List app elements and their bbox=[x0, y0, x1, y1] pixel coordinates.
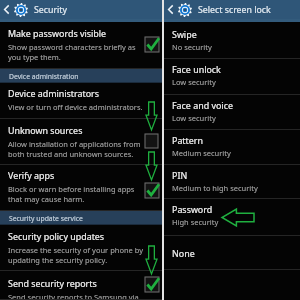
staticText: Medium to high security bbox=[172, 183, 258, 193]
button[interactable]: Security policy updates bbox=[0, 225, 162, 271]
staticText: Select screen lock bbox=[198, 4, 271, 16]
staticText: Security update service bbox=[9, 214, 83, 223]
staticText: Unknown sources bbox=[8, 124, 83, 136]
button[interactable]: Send security reports bbox=[0, 271, 162, 300]
button[interactable]: Settings bbox=[178, 3, 192, 17]
staticText: PIN bbox=[172, 169, 188, 181]
button[interactable]: Settings bbox=[14, 3, 28, 17]
staticText: that may cause harm. bbox=[8, 194, 85, 204]
staticText: View or turn off device administrators. bbox=[8, 102, 143, 112]
staticText: both trusted and unknown sources. bbox=[8, 149, 134, 159]
button[interactable]: Make passwords visible bbox=[0, 22, 162, 69]
staticText: Device administrators bbox=[8, 87, 100, 99]
staticText: Low security bbox=[172, 77, 216, 87]
staticText: Swipe bbox=[172, 28, 197, 40]
button[interactable]: None bbox=[164, 236, 300, 270]
staticText: None bbox=[172, 247, 195, 259]
staticText: Face and voice bbox=[172, 99, 233, 111]
button[interactable]: Unknown sources bbox=[0, 119, 162, 165]
staticText: Verify apps bbox=[8, 169, 55, 181]
staticText: Face unlock bbox=[172, 63, 221, 75]
staticText: Send security reports bbox=[8, 277, 97, 289]
button[interactable]: Face and voice bbox=[164, 95, 300, 130]
staticText: Block or warn before installing apps bbox=[8, 184, 135, 194]
button[interactable]: Face unlock bbox=[164, 59, 300, 95]
button[interactable]: Password bbox=[164, 199, 300, 236]
button[interactable]: Swipe bbox=[164, 24, 300, 59]
staticText: you type them. bbox=[8, 52, 61, 62]
staticText: Password bbox=[172, 203, 213, 215]
staticText: Show password characters briefly as bbox=[8, 42, 136, 52]
button[interactable]: Verify apps bbox=[0, 165, 162, 211]
staticText: Device administration bbox=[9, 72, 79, 81]
staticText: Pattern bbox=[172, 134, 203, 146]
staticText: Security bbox=[34, 4, 68, 16]
staticText: High security bbox=[172, 217, 219, 227]
staticText: updating the security policy. bbox=[8, 255, 108, 265]
button[interactable]: Pattern bbox=[164, 130, 300, 165]
button[interactable]: Back bbox=[4, 5, 9, 14]
staticText: Low security bbox=[172, 113, 216, 123]
staticText: Increase the security of your phone by bbox=[8, 245, 144, 255]
button[interactable]: Back bbox=[168, 5, 173, 14]
staticText: No security bbox=[172, 42, 212, 52]
staticText: Medium security bbox=[172, 148, 231, 158]
staticText: Make passwords visible bbox=[8, 27, 107, 39]
staticText: Send security reports to Samsung via bbox=[8, 292, 139, 300]
button[interactable]: PIN bbox=[164, 165, 300, 199]
staticText: Allow installation of applications from bbox=[8, 139, 141, 149]
staticText: Security policy updates bbox=[8, 230, 105, 242]
button[interactable]: Device administrators bbox=[0, 83, 162, 119]
